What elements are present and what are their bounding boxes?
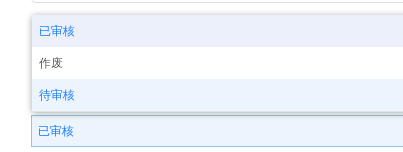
staticText: 已审核 [39,23,75,38]
button[interactable] [31,0,403,3]
staticText: 作废 [39,55,63,70]
button[interactable]: 已审核 [32,15,403,47]
button[interactable]: 作废 [32,47,403,79]
button[interactable]: 待审核 [32,79,403,111]
staticText: 待审核 [39,87,75,102]
button[interactable]: 已审核 [31,115,403,147]
staticText: 已审核 [38,123,74,138]
